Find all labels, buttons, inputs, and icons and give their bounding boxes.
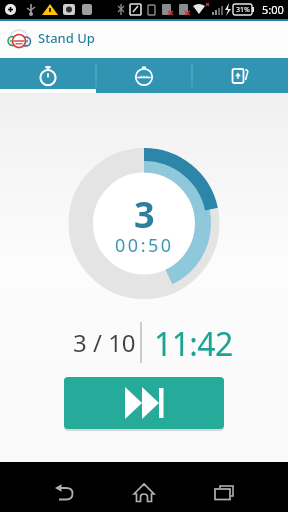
staticText: 5:00 (262, 2, 284, 17)
button[interactable] (96, 58, 192, 93)
staticText: 00:50 (115, 233, 174, 258)
button[interactable] (96, 462, 192, 512)
button[interactable] (0, 462, 96, 512)
button[interactable] (0, 58, 96, 93)
staticText: 11:42 (154, 322, 233, 363)
button[interactable] (64, 377, 224, 429)
button[interactable] (192, 58, 288, 93)
staticText: 3 (134, 190, 155, 239)
staticText: 31% (236, 5, 250, 15)
staticText: Stand Up (38, 29, 95, 47)
staticText: 3 / 10 (73, 326, 136, 359)
button[interactable] (192, 462, 288, 512)
